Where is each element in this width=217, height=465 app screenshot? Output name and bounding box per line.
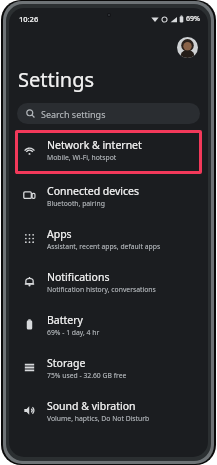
staticText: Search settings bbox=[41, 108, 106, 120]
staticText: Notifications bbox=[47, 270, 110, 284]
staticText: Volume, haptics, Do Not Disturb bbox=[47, 414, 150, 423]
staticText: Sound & vibration bbox=[47, 399, 136, 413]
button[interactable]: Connected devices bbox=[9, 174, 208, 217]
button[interactable]: Search settings bbox=[17, 103, 200, 124]
staticText: 10:26 bbox=[19, 14, 39, 24]
button[interactable]: Battery bbox=[9, 303, 208, 346]
staticText: Apps bbox=[47, 227, 72, 241]
staticText: Network & internet bbox=[47, 138, 142, 152]
button[interactable]: Network & internet bbox=[15, 130, 202, 170]
button[interactable]: Account profile bbox=[177, 37, 198, 58]
button[interactable]: Storage bbox=[9, 346, 208, 389]
staticText: Storage bbox=[47, 356, 86, 370]
button[interactable]: Sound & vibration bbox=[9, 389, 208, 432]
staticText: Notification history, conversations bbox=[47, 285, 156, 294]
button[interactable]: Apps bbox=[9, 217, 208, 260]
staticText: Connected devices bbox=[47, 184, 140, 198]
staticText: Bluetooth, pairing bbox=[47, 199, 105, 208]
staticText: Settings bbox=[18, 66, 95, 93]
staticText: Mobile, Wi-Fi, hotspot bbox=[47, 153, 117, 162]
staticText: 69% - 1 day, 4 hr bbox=[47, 328, 100, 337]
staticText: 69% bbox=[186, 14, 200, 24]
button[interactable]: Notifications bbox=[9, 260, 208, 303]
staticText: Battery bbox=[47, 313, 83, 327]
staticText: Assistant, recent apps, default apps bbox=[47, 242, 161, 251]
staticText: 75% used - 32.60 GB free bbox=[47, 371, 127, 380]
